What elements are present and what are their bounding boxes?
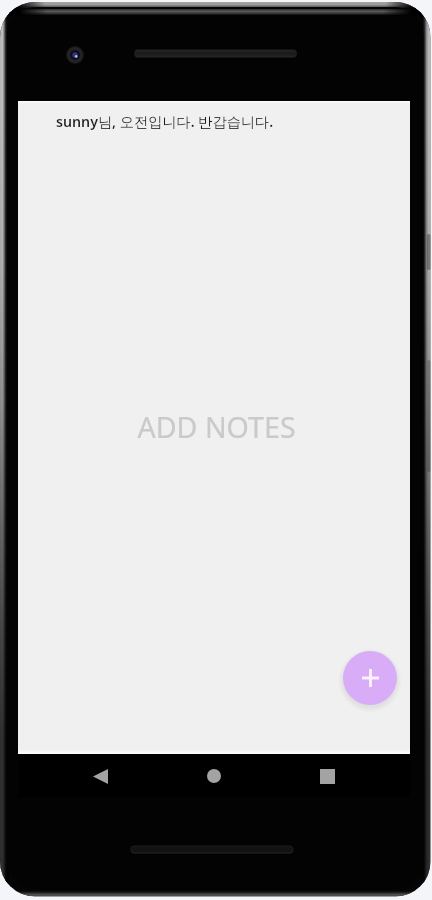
button[interactable]: Recent apps [299,754,355,798]
button[interactable]: Back [72,754,128,798]
staticText: sunny님, 오전입니다. 반갑습니다. [56,112,274,131]
staticText: ADD NOTES [137,407,296,446]
button[interactable]: Add note [343,651,397,705]
button[interactable]: Home [186,754,242,798]
